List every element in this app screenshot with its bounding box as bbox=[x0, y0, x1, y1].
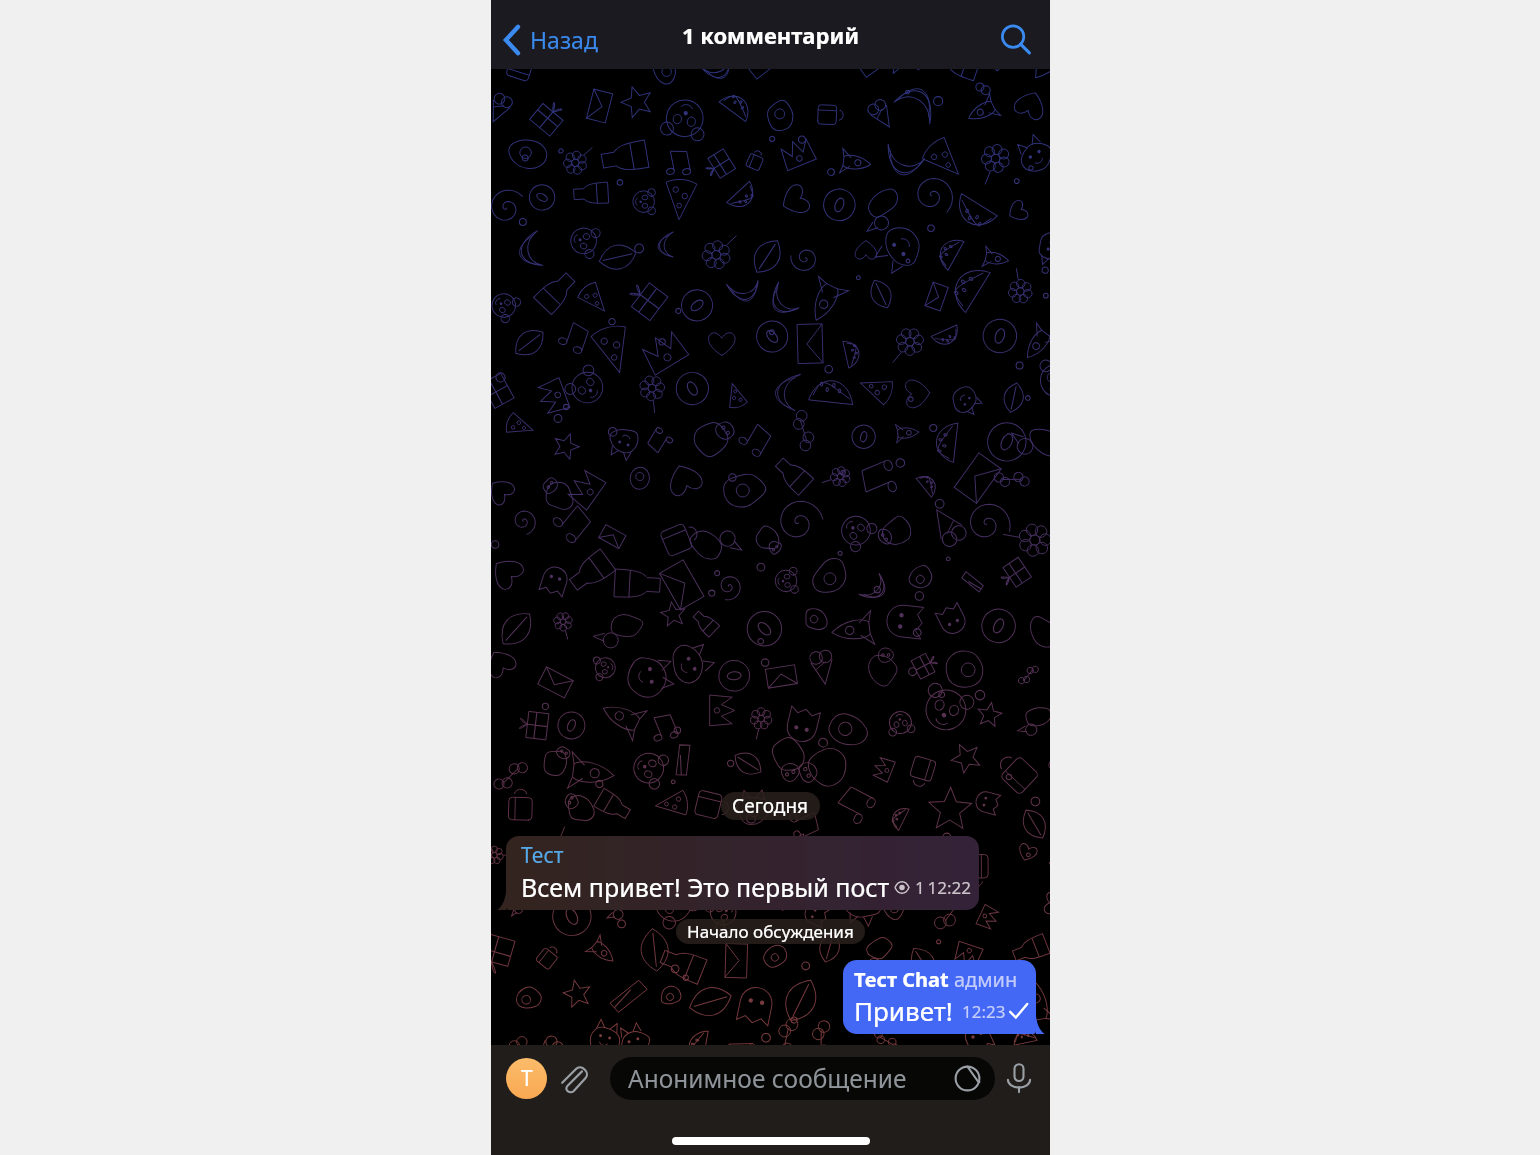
staticText: Начало обсуждения bbox=[687, 920, 854, 943]
button[interactable]: Тест bbox=[506, 836, 979, 910]
button[interactable]: Attach file bbox=[553, 1058, 593, 1098]
staticText: 1 комментарий bbox=[682, 20, 860, 50]
button[interactable]: Начало обсуждения bbox=[676, 919, 865, 944]
button[interactable]: Schedule message bbox=[954, 1065, 981, 1092]
button[interactable]: Анонимное сообщение bbox=[610, 1057, 995, 1100]
button[interactable]: Тест Chat bbox=[843, 960, 1036, 1034]
staticText: админ bbox=[954, 966, 1018, 993]
staticText: Анонимное сообщение bbox=[628, 1062, 954, 1095]
staticText: Назад bbox=[530, 24, 598, 55]
button[interactable]: Сегодня bbox=[721, 792, 820, 820]
staticText: Всем привет! Это первый пост bbox=[521, 870, 890, 904]
button[interactable]: Record voice message bbox=[999, 1058, 1039, 1098]
staticText: Сегодня bbox=[732, 793, 809, 819]
button[interactable]: Account bbox=[506, 1058, 547, 1099]
staticText: 12:23 bbox=[962, 1000, 1006, 1023]
staticText: Привет! bbox=[854, 993, 953, 1028]
staticText: Тест Chat bbox=[854, 966, 949, 993]
button[interactable]: Search bbox=[992, 12, 1038, 58]
staticText: Тест bbox=[521, 841, 564, 870]
staticText: 1 12:22 bbox=[915, 876, 971, 899]
button[interactable]: Back bbox=[497, 17, 606, 62]
staticText: T bbox=[521, 1064, 533, 1093]
